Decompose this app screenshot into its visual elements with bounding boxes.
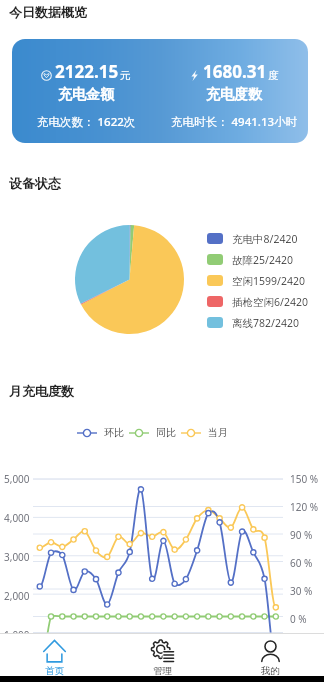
button[interactable]: 环比 <box>77 426 124 439</box>
staticText: 空闲1599/2420 <box>232 274 305 288</box>
staticText: 充电时长： 4941.13小时 <box>171 114 298 130</box>
staticText: 5,000 <box>4 472 30 486</box>
staticText: 1,000 <box>4 628 30 642</box>
staticText: 离线782/2420 <box>232 316 299 330</box>
staticText: 故障25/2420 <box>232 253 293 267</box>
staticText: 管理 <box>153 665 172 676</box>
staticText: 2122.15 <box>55 60 119 83</box>
staticText: 120 % <box>290 500 319 514</box>
staticText: 3,000 <box>4 550 30 564</box>
staticText: 150 % <box>290 472 319 486</box>
staticText: 0 % <box>290 612 307 626</box>
staticText: 首页 <box>45 665 64 676</box>
staticText: 环比 <box>104 426 124 439</box>
staticText: 30 % <box>290 584 313 598</box>
button[interactable]: 管理 <box>108 634 216 676</box>
staticText: 充电金额 <box>58 86 114 104</box>
staticText: 今日数据概览 <box>9 4 87 20</box>
staticText: 1680.31 <box>203 60 267 83</box>
staticText: 度 <box>268 69 279 82</box>
staticText: 设备状态 <box>9 175 61 191</box>
staticText: 同比 <box>156 426 176 439</box>
staticText: 当月 <box>208 426 228 439</box>
button[interactable]: 我的 <box>216 634 324 676</box>
staticText: 月充电度数 <box>9 383 74 399</box>
staticText: 充电次数： 1622次 <box>37 114 136 130</box>
button[interactable]: 当月 <box>181 426 228 439</box>
staticText: 4,000 <box>4 511 30 525</box>
staticText: 元 <box>120 69 131 82</box>
button[interactable]: 2122.15 <box>12 39 308 143</box>
staticText: 60 % <box>290 556 313 570</box>
button[interactable]: 首页 <box>0 634 108 676</box>
staticText: 充电度数 <box>206 86 262 104</box>
staticText: 充电中8/2420 <box>232 232 298 246</box>
staticText: 2,000 <box>4 589 30 603</box>
button[interactable]: 同比 <box>129 426 176 439</box>
staticText: 插枪空闲6/2420 <box>232 295 308 309</box>
staticText: 90 % <box>290 528 313 542</box>
staticText: 我的 <box>261 665 280 676</box>
